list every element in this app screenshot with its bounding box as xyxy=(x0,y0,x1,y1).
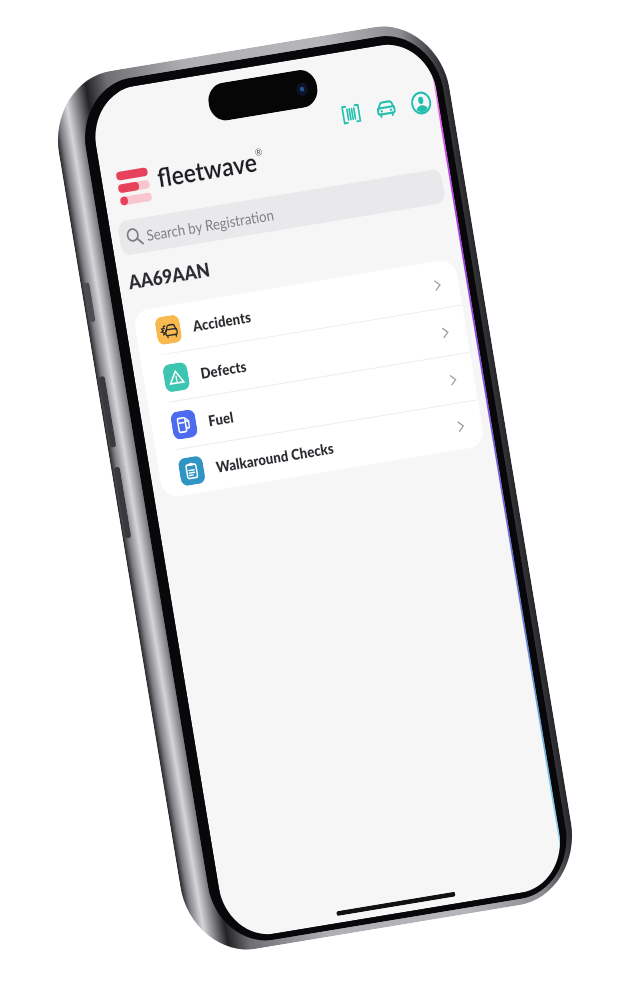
button[interactable]: Accidents xyxy=(132,258,462,358)
staticText: Fuel xyxy=(207,407,235,429)
staticText: AA69AAN xyxy=(126,257,212,294)
button[interactable]: Scan barcode xyxy=(336,97,367,131)
button[interactable]: Fuel xyxy=(148,353,478,452)
button[interactable]: Walkaround Checks xyxy=(156,400,485,499)
staticText: ® xyxy=(254,145,264,158)
button[interactable]: AA69AAN xyxy=(116,211,462,299)
button[interactable]: Account xyxy=(405,86,436,119)
staticText: Search by Registration xyxy=(145,205,276,244)
staticText: Accidents xyxy=(191,307,252,335)
button[interactable]: Search by Registration xyxy=(117,168,446,256)
staticText: fleetwave xyxy=(155,145,259,192)
staticText: Defects xyxy=(199,357,248,382)
staticText: Walkaround Checks xyxy=(215,438,336,476)
button[interactable]: Vehicles xyxy=(370,91,401,125)
button[interactable]: Defects xyxy=(140,305,470,405)
